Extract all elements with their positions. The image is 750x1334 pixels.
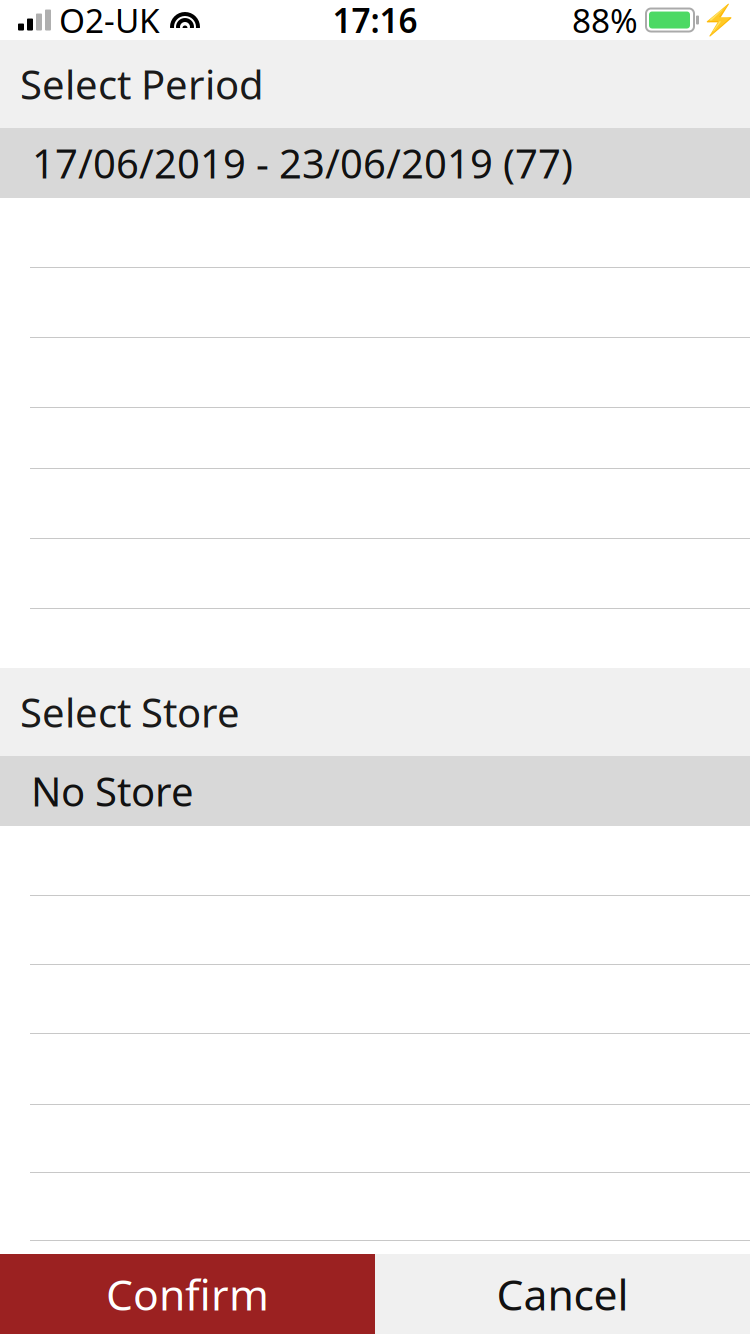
- staticText: No Store: [31, 764, 194, 817]
- staticText: Cancel: [496, 1266, 628, 1322]
- staticText: Confirm: [106, 1266, 269, 1322]
- button[interactable]: Cancel: [375, 1254, 750, 1334]
- staticText: 17:16: [332, 0, 417, 42]
- button[interactable]: No Store: [0, 756, 750, 826]
- staticText: O2-UK: [59, 0, 160, 42]
- staticText: Select Store: [20, 685, 240, 738]
- button[interactable]: Confirm: [0, 1254, 375, 1334]
- staticText: 88%: [572, 0, 638, 42]
- staticText: 17/06/2019 - 23/06/2019 (77): [32, 136, 573, 189]
- button[interactable]: 17/06/2019 - 23/06/2019 (77): [0, 128, 750, 198]
- staticText: Select Period: [20, 57, 264, 110]
- staticText: ⚡: [701, 3, 738, 37]
